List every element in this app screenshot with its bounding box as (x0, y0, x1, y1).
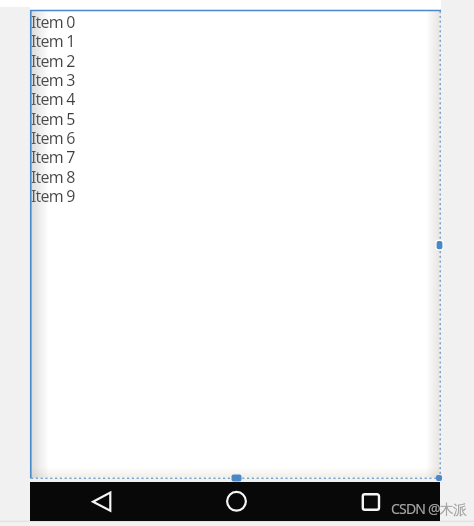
button[interactable] (207, 484, 267, 520)
button[interactable]: Item 7 (31, 146, 411, 165)
button[interactable]: Item 4 (31, 88, 411, 107)
staticText: Item 2 (31, 50, 75, 69)
button[interactable]: Item 9 (31, 185, 411, 204)
staticText: Item 0 (31, 11, 75, 30)
button[interactable]: Item 5 (31, 108, 411, 127)
staticText: Item 3 (31, 69, 75, 88)
button[interactable]: Item 3 (31, 69, 411, 88)
staticText: Item 5 (31, 108, 75, 127)
button[interactable]: Item 6 (31, 127, 411, 146)
staticText: Item 4 (31, 88, 75, 107)
staticText: Item 6 (31, 127, 75, 146)
button[interactable] (341, 484, 401, 520)
button[interactable]: Item 2 (31, 50, 411, 69)
staticText: Item 9 (31, 185, 75, 204)
button[interactable]: Item 0 (31, 11, 411, 30)
button[interactable]: Item 1 (31, 30, 411, 49)
staticText: Item 8 (31, 166, 75, 185)
staticText: Item 1 (31, 30, 75, 49)
staticText: CSDN @木派 (391, 499, 467, 518)
button[interactable]: Item 8 (31, 166, 411, 185)
staticText: Item 7 (31, 146, 75, 165)
button[interactable] (72, 484, 132, 520)
